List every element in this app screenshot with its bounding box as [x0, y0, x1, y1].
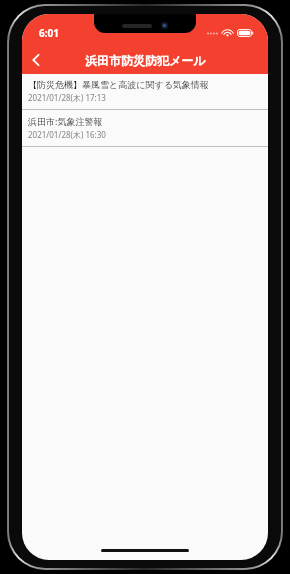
- staticText: 浜田市防災防犯メール: [85, 53, 206, 68]
- button[interactable]: 【防災危機】暴風雪と高波に関する気象情報: [22, 74, 268, 109]
- staticText: 2021/01/28(木) 16:30: [28, 129, 106, 140]
- button[interactable]: Back: [22, 46, 50, 74]
- staticText: 浜田市:気象注警報: [28, 115, 103, 127]
- staticText: 2021/01/28(木) 17:13: [28, 92, 106, 103]
- staticText: 6:01: [39, 26, 59, 40]
- button[interactable]: 浜田市:気象注警報: [22, 110, 268, 146]
- staticText: 【防災危機】暴風雪と高波に関する気象情報: [28, 79, 209, 90]
